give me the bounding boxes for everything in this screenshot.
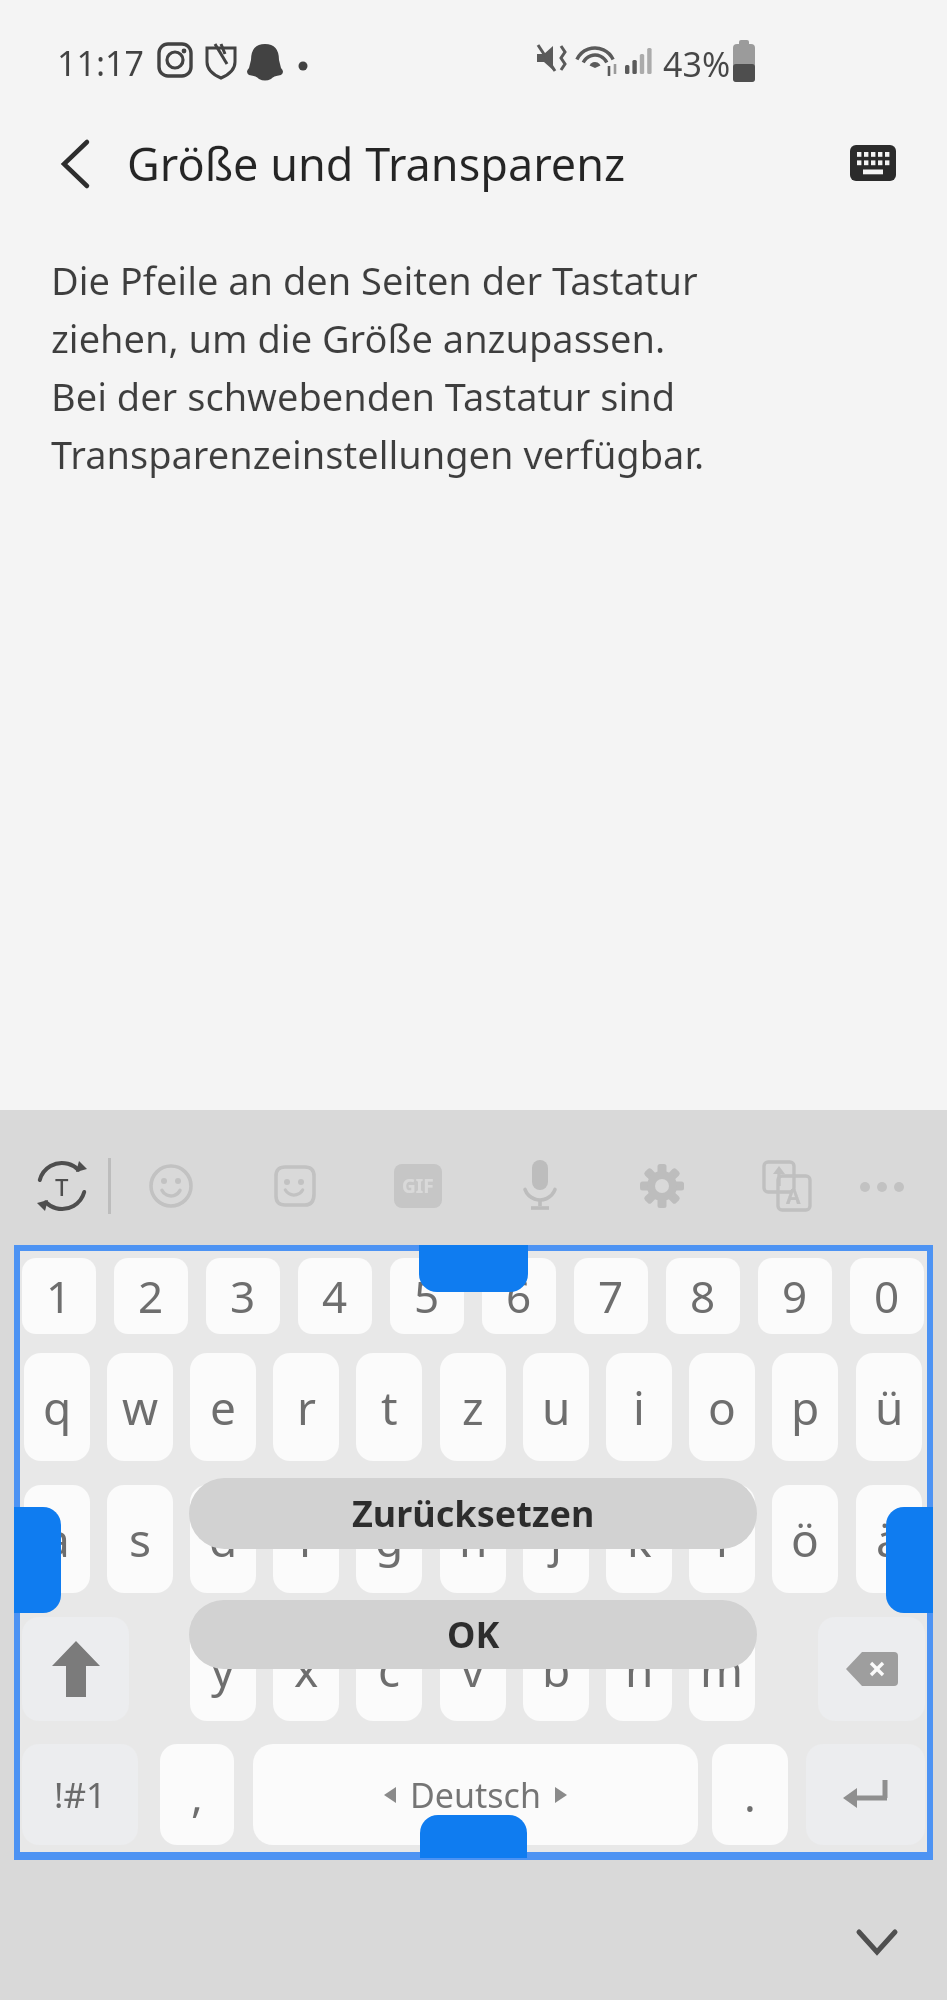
staticText: n bbox=[625, 1638, 654, 1701]
button[interactable]: f bbox=[273, 1485, 339, 1593]
button[interactable] bbox=[40, 130, 110, 200]
button[interactable]: 4 bbox=[298, 1258, 372, 1334]
staticText: 3 bbox=[230, 1266, 256, 1326]
button[interactable]: 5 bbox=[390, 1258, 464, 1334]
staticText: t bbox=[381, 1376, 398, 1439]
button[interactable] bbox=[516, 1158, 564, 1214]
staticText: !#1 bbox=[54, 1771, 107, 1819]
button[interactable] bbox=[818, 1617, 925, 1721]
button[interactable]: ä bbox=[856, 1485, 922, 1593]
staticText: y bbox=[211, 1638, 235, 1701]
button[interactable]: A bbox=[762, 1160, 812, 1212]
staticText: 9 bbox=[782, 1266, 808, 1326]
staticText: b bbox=[542, 1638, 571, 1701]
button[interactable]: x bbox=[273, 1617, 339, 1721]
button[interactable]: !#1 bbox=[22, 1744, 138, 1845]
button[interactable]: s bbox=[107, 1485, 173, 1593]
button[interactable]: Deutsch bbox=[253, 1744, 698, 1845]
staticText: 4 bbox=[322, 1266, 348, 1326]
button[interactable]: d bbox=[190, 1485, 256, 1593]
staticText: Die Pfeile an den Seiten der Tastatur zi… bbox=[51, 254, 705, 480]
staticText: q bbox=[43, 1376, 72, 1439]
button[interactable]: o bbox=[689, 1353, 755, 1461]
button[interactable] bbox=[886, 1507, 933, 1613]
button[interactable]: y bbox=[190, 1617, 256, 1721]
button[interactable] bbox=[638, 1162, 686, 1210]
button[interactable] bbox=[420, 1815, 527, 1858]
button[interactable]: T bbox=[30, 1154, 94, 1218]
button[interactable]: p bbox=[772, 1353, 838, 1461]
staticText: 2 bbox=[138, 1266, 164, 1326]
button[interactable]: 0 bbox=[850, 1258, 924, 1334]
button[interactable]: c bbox=[356, 1617, 422, 1721]
staticText: c bbox=[378, 1638, 401, 1701]
button[interactable]: OK bbox=[189, 1600, 757, 1669]
staticText: 0 bbox=[874, 1266, 900, 1326]
button[interactable]: i bbox=[606, 1353, 672, 1461]
staticText: f bbox=[298, 1508, 314, 1571]
staticText: d bbox=[209, 1508, 238, 1571]
button[interactable]: m bbox=[689, 1617, 755, 1721]
button[interactable]: l bbox=[689, 1485, 755, 1593]
button[interactable]: z bbox=[440, 1353, 506, 1461]
staticText: r bbox=[297, 1376, 316, 1439]
staticText: e bbox=[210, 1376, 236, 1439]
staticText: Deutsch bbox=[410, 1772, 541, 1818]
button[interactable] bbox=[147, 1162, 195, 1210]
button[interactable]: j bbox=[523, 1485, 589, 1593]
staticText: , bbox=[191, 1765, 203, 1825]
button[interactable] bbox=[22, 1617, 129, 1721]
button[interactable]: r bbox=[273, 1353, 339, 1461]
button[interactable]: v bbox=[440, 1617, 506, 1721]
button[interactable]: e bbox=[190, 1353, 256, 1461]
button[interactable]: u bbox=[523, 1353, 589, 1461]
button[interactable]: a bbox=[24, 1485, 90, 1593]
staticText: a bbox=[44, 1508, 70, 1571]
button[interactable]: . bbox=[712, 1744, 788, 1845]
staticText: i bbox=[633, 1376, 645, 1439]
staticText: ä bbox=[876, 1508, 902, 1571]
staticText: A bbox=[786, 1182, 801, 1211]
button[interactable] bbox=[14, 1507, 61, 1613]
button[interactable]: t bbox=[356, 1353, 422, 1461]
button[interactable] bbox=[271, 1162, 319, 1210]
staticText: p bbox=[791, 1376, 820, 1439]
staticText: m bbox=[700, 1638, 744, 1701]
button[interactable]: 1 bbox=[22, 1258, 96, 1334]
staticText: v bbox=[461, 1638, 485, 1701]
button[interactable]: GIF bbox=[394, 1164, 442, 1208]
button[interactable]: 7 bbox=[574, 1258, 648, 1334]
button[interactable]: 2 bbox=[114, 1258, 188, 1334]
staticText: 11:17 bbox=[57, 40, 144, 86]
button[interactable]: w bbox=[107, 1353, 173, 1461]
button[interactable]: 8 bbox=[666, 1258, 740, 1334]
button[interactable]: 3 bbox=[206, 1258, 280, 1334]
staticText: GIF bbox=[402, 1173, 434, 1199]
button[interactable]: , bbox=[160, 1744, 234, 1845]
staticText: Größe und Transparenz bbox=[127, 133, 626, 194]
button[interactable] bbox=[806, 1744, 925, 1845]
button[interactable]: b bbox=[523, 1617, 589, 1721]
button[interactable]: n bbox=[606, 1617, 672, 1721]
staticText: o bbox=[708, 1376, 736, 1439]
staticText: z bbox=[462, 1376, 484, 1439]
button[interactable] bbox=[419, 1245, 528, 1292]
button[interactable]: Zurücksetzen bbox=[189, 1478, 757, 1549]
button[interactable] bbox=[850, 1920, 906, 1970]
button[interactable]: ö bbox=[772, 1485, 838, 1593]
button[interactable]: q bbox=[24, 1353, 90, 1461]
button[interactable]: k bbox=[606, 1485, 672, 1593]
button[interactable] bbox=[858, 1180, 910, 1194]
button[interactable]: 9 bbox=[758, 1258, 832, 1334]
staticText: x bbox=[294, 1638, 319, 1701]
staticText: k bbox=[627, 1508, 652, 1571]
staticText: l bbox=[716, 1508, 728, 1571]
staticText: j bbox=[550, 1508, 562, 1571]
button[interactable]: h bbox=[440, 1485, 506, 1593]
button[interactable] bbox=[836, 130, 910, 196]
button[interactable]: 6 bbox=[482, 1258, 556, 1334]
staticText: ü bbox=[875, 1376, 904, 1439]
staticText: Zurücksetzen bbox=[352, 1489, 595, 1538]
button[interactable]: ü bbox=[856, 1353, 922, 1461]
button[interactable]: g bbox=[356, 1485, 422, 1593]
